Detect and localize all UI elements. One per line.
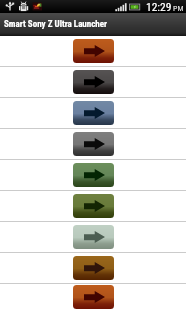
button[interactable]: Launch bbox=[0, 36, 186, 66]
other: Launch bbox=[73, 163, 114, 187]
button[interactable]: Launch bbox=[0, 253, 186, 283]
button[interactable]: Launch bbox=[0, 129, 186, 159]
other: Launch bbox=[73, 285, 114, 309]
other: Launch bbox=[73, 256, 114, 280]
button[interactable]: Smart Sony Z Ultra Launcher bbox=[0, 13, 186, 36]
button[interactable]: Launch bbox=[0, 67, 186, 97]
button[interactable]: Launch bbox=[0, 222, 186, 252]
staticText: PM bbox=[173, 4, 184, 13]
staticText: Smart Sony Z Ultra Launcher bbox=[4, 19, 108, 30]
other: Launch bbox=[73, 194, 114, 218]
staticText: 12:29 bbox=[146, 0, 172, 13]
button[interactable]: Launch bbox=[0, 284, 186, 310]
button[interactable]: Launch bbox=[0, 191, 186, 221]
other: Launch bbox=[73, 70, 114, 94]
other: Launch bbox=[73, 101, 114, 125]
other: Launch bbox=[73, 39, 114, 63]
button[interactable]: Launch bbox=[0, 98, 186, 128]
other: Launch bbox=[73, 225, 114, 249]
button[interactable]: Launch bbox=[0, 160, 186, 190]
other: Launch bbox=[73, 132, 114, 156]
